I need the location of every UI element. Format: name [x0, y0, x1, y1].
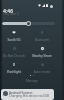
button[interactable]: Android System	[1, 89, 54, 100]
staticText: Manage	[26, 79, 38, 83]
staticText: Bluetooth	[29, 38, 55, 42]
staticText: Android System	[9, 91, 33, 95]
button[interactable]: Account settings	[50, 5, 53, 8]
staticText: 4:46	[3, 7, 14, 14]
staticText: Sunlit 5G	[1, 38, 27, 42]
button[interactable]: Flashlight	[0, 62, 28, 78]
staticText: Flashlight	[1, 70, 27, 74]
staticText: Auto-rotate	[29, 70, 55, 74]
staticText: Charging this device via USB	[9, 94, 49, 98]
button[interactable]: Brightness	[2, 22, 55, 25]
button[interactable]: Manage	[26, 79, 38, 83]
button[interactable]: Sunlit 5G	[0, 30, 28, 46]
staticText: Thu, Mar 3	[3, 12, 19, 16]
button[interactable]: Auto-rotate	[28, 62, 56, 78]
button[interactable]: Do Not Disturb	[0, 46, 28, 62]
button[interactable]: Bluetooth	[28, 30, 56, 46]
staticText: Nearby Share	[29, 54, 55, 58]
button[interactable]: Nearby Share	[28, 46, 56, 62]
staticText: Do Not Disturb	[1, 54, 27, 58]
